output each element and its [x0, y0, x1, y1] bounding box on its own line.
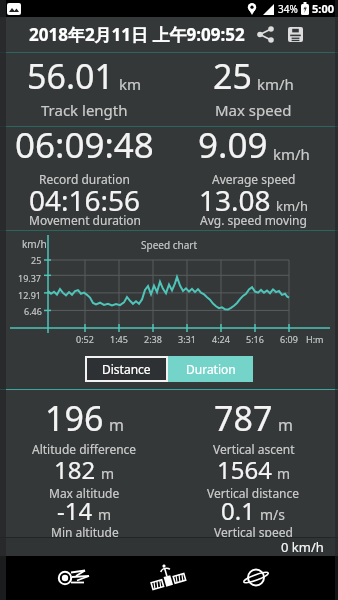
staticText: m [98, 505, 112, 524]
staticText: m [277, 464, 291, 483]
staticText: Track length [41, 100, 128, 120]
staticText: 0.1 [221, 494, 255, 527]
staticText: 787 [214, 395, 273, 441]
button[interactable] [287, 26, 304, 43]
staticText: 1:45 [110, 333, 128, 345]
staticText: 25 [213, 53, 252, 99]
staticText: 0:52 [76, 333, 94, 345]
staticText: 5:00 [312, 1, 334, 16]
staticText: Max altitude [49, 485, 120, 501]
staticText: 4:24 [212, 333, 230, 345]
staticText: 6.46 [24, 305, 42, 317]
staticText: 04:16:56 [29, 181, 141, 219]
button[interactable]: Distance [85, 356, 168, 382]
staticText: m [109, 414, 124, 436]
staticText: km/h [22, 237, 47, 251]
staticText: km/h [276, 197, 308, 215]
staticText: km/h [257, 74, 294, 94]
staticText: Record duration [39, 171, 130, 187]
staticText: 34% [278, 2, 298, 16]
staticText: 0 km/h [281, 538, 324, 556]
staticText: 25 [31, 254, 42, 266]
button[interactable]: Duration [168, 356, 253, 382]
staticText: m/s [260, 505, 286, 524]
staticText: 3:31 [178, 333, 196, 345]
staticText: Avg. speed moving [200, 212, 307, 228]
staticText: 182 [54, 453, 96, 486]
staticText: Movement duration [29, 212, 141, 228]
staticText: 9.09 [198, 121, 268, 169]
staticText: 56.01 [27, 53, 114, 99]
button[interactable]: 56.01 [0, 53, 169, 126]
staticText: 2:38 [144, 333, 162, 345]
staticText: m [278, 414, 293, 436]
staticText: Duration [186, 361, 236, 377]
staticText: 1564 [217, 453, 272, 486]
staticText: Altitude difference [32, 441, 137, 457]
staticText: 2018年2月11日 上午9:09:52 [29, 23, 245, 46]
button[interactable] [257, 26, 274, 43]
button[interactable] [240, 565, 272, 591]
staticText: m [101, 464, 115, 483]
staticText: 5:16 [246, 333, 264, 345]
staticText: Min altitude [51, 524, 119, 540]
staticText: Distance [102, 361, 151, 377]
staticText: H:m [306, 333, 324, 345]
button[interactable] [56, 566, 90, 588]
staticText: 196 [45, 395, 104, 441]
staticText: 19.37 [18, 272, 42, 284]
staticText: Average speed [212, 171, 296, 187]
staticText: 12.91 [18, 289, 42, 301]
staticText: km [119, 74, 142, 94]
staticText: km/h [273, 144, 310, 164]
staticText: Vertical distance [207, 485, 300, 501]
button[interactable]: 25 [169, 53, 338, 126]
staticText: Vertical speed [214, 524, 293, 540]
staticText: Vertical ascent [213, 441, 295, 457]
staticText: Speed chart [141, 238, 197, 252]
button[interactable] [150, 562, 186, 594]
staticText: -14 [57, 494, 93, 527]
staticText: 13.08 [199, 181, 271, 219]
staticText: Max speed [215, 100, 292, 120]
staticText: 06:09:48 [15, 121, 154, 169]
staticText: 6:09 [280, 333, 298, 345]
